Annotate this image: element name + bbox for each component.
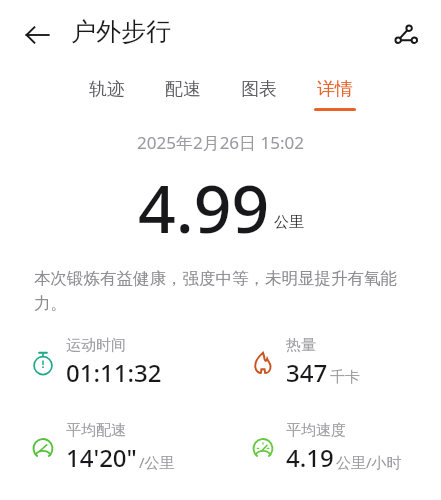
staticText: 详情 <box>317 78 353 101</box>
button[interactable]: Share <box>389 18 423 52</box>
button[interactable]: 详情 <box>306 76 364 113</box>
button[interactable]: 轨迹 <box>78 76 136 113</box>
staticText: 千卡 <box>330 368 360 387</box>
staticText: /公里 <box>139 452 175 472</box>
staticText: 公里/小时 <box>336 452 402 472</box>
button[interactable]: 图表 <box>230 76 288 113</box>
button[interactable]: 热量 <box>220 336 441 389</box>
button[interactable]: 运动时间 <box>0 336 220 389</box>
staticText: 01:11:32 <box>66 356 162 389</box>
staticText: 4.99 <box>138 162 270 240</box>
staticText: 2025年2月26日 15:02 <box>137 131 304 154</box>
staticText: 平均配速 <box>66 421 126 440</box>
staticText: 14'20" <box>66 441 137 474</box>
button[interactable]: Back <box>20 18 54 52</box>
staticText: 户外步行 <box>71 16 171 47</box>
staticText: 平均速度 <box>286 421 346 440</box>
staticText: 轨迹 <box>89 78 125 101</box>
button[interactable]: 平均配速 <box>0 421 220 474</box>
button[interactable]: 配速 <box>154 76 212 113</box>
button[interactable]: 平均速度 <box>220 421 441 474</box>
staticText: 配速 <box>165 78 201 101</box>
staticText: 图表 <box>241 78 277 101</box>
staticText: 347 <box>286 356 328 389</box>
staticText: 本次锻炼有益健康，强度中等，未明显提升有氧能力。 <box>34 268 419 314</box>
staticText: 运动时间 <box>66 336 126 355</box>
staticText: 热量 <box>286 336 316 355</box>
staticText: 4.19 <box>286 441 334 474</box>
staticText: 公里 <box>274 213 304 232</box>
